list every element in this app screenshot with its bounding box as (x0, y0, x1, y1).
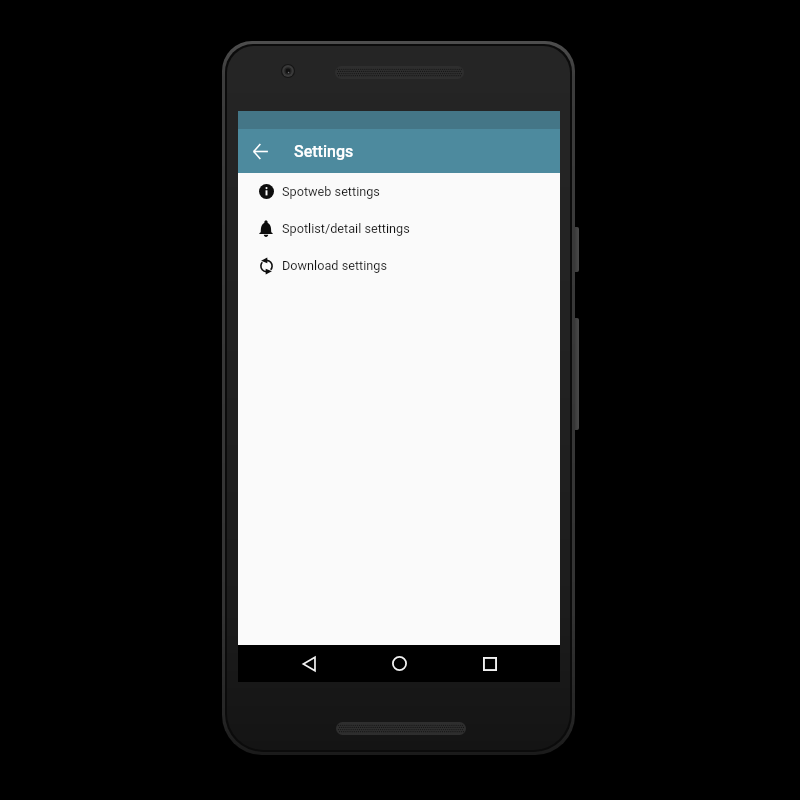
button[interactable]: Back (287, 645, 331, 682)
button[interactable]: Navigate up (238, 129, 282, 173)
staticText: Spotweb settings (282, 184, 380, 199)
button[interactable]: Home (377, 645, 421, 682)
staticText: Settings (294, 142, 354, 161)
button[interactable]: Spotlist/detail settings (238, 210, 560, 247)
button[interactable]: Spotweb settings (238, 173, 560, 210)
staticText: Download settings (282, 258, 387, 273)
button[interactable]: Recent apps (468, 645, 512, 682)
staticText: Spotlist/detail settings (282, 221, 410, 236)
button[interactable]: Download settings (238, 247, 560, 284)
